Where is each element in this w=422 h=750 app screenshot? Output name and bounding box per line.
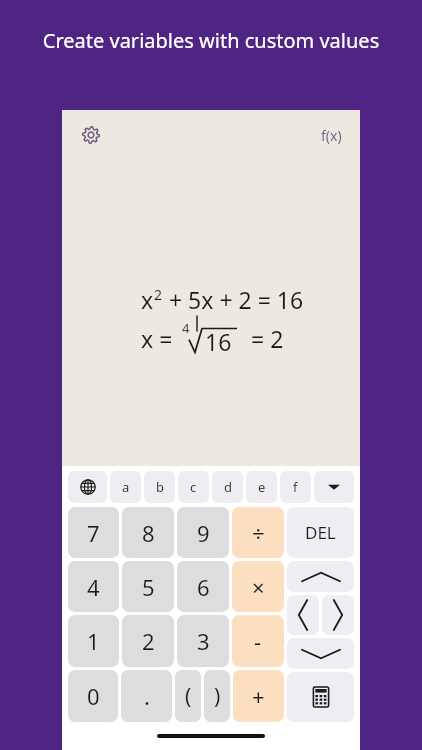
staticText: 9 [197,518,210,548]
button[interactable]: ) [204,670,230,722]
button[interactable]: ( [175,670,201,722]
staticText: × [252,572,265,602]
button[interactable]: b [144,471,175,503]
button[interactable]: c [178,471,209,503]
staticText: - [254,626,262,656]
staticText: 2 [142,626,155,656]
staticText: b [156,478,164,496]
button[interactable]: e [246,471,277,503]
staticText: ) [214,682,221,711]
button[interactable]: 7 [68,507,119,558]
staticText: 1 [87,626,100,656]
staticText: ( [185,682,192,711]
button[interactable]: More [314,471,354,503]
staticText: d [224,478,232,496]
button[interactable]: 3 [177,615,229,667]
button[interactable]: a [110,471,141,503]
button[interactable]: Language [68,471,107,503]
staticText: c [190,478,197,496]
button[interactable]: ÷ [232,507,284,558]
button[interactable]: f(x) [317,122,346,149]
button[interactable]: 4 [68,561,119,612]
staticText: . [144,681,150,711]
button[interactable]: Down [287,638,354,669]
staticText: = 2 [251,323,284,354]
button[interactable]: DEL [287,507,354,558]
button[interactable]: 9 [177,507,229,558]
button[interactable]: 0 [68,670,118,722]
staticText: x [141,284,154,315]
staticText: ÷ [252,518,265,548]
button[interactable]: Right [322,595,354,635]
button[interactable]: + [233,670,284,722]
button[interactable]: Left [287,595,319,635]
button[interactable]: 6 [177,561,229,612]
staticText: 7 [87,518,100,548]
staticText: 3 [197,626,210,656]
staticText: e [258,478,266,496]
staticText: f(x) [321,126,342,145]
staticText: Create variables with custom values [40,27,382,54]
staticText: 0 [87,681,100,711]
staticText: + 5x + 2 = 16 [163,284,304,315]
button[interactable]: × [232,561,284,612]
button[interactable]: Calculator [287,672,354,722]
button[interactable]: - [232,615,284,667]
staticText: 5 [142,572,155,602]
staticText: 4 [182,319,190,337]
button[interactable]: 1 [68,615,119,667]
button[interactable]: 5 [122,561,174,612]
staticText: 6 [197,572,210,602]
staticText: a [122,478,130,496]
staticText: 16 [205,326,232,357]
staticText: 8 [142,518,155,548]
staticText: x = [141,323,173,354]
button[interactable]: 8 [122,507,174,558]
staticText: + [252,681,265,711]
staticText: 4 [87,572,100,602]
staticText: DEL [305,521,336,544]
button[interactable]: . [121,670,172,722]
button[interactable]: d [212,471,243,503]
button[interactable]: Settings [76,120,106,150]
button[interactable]: f [280,471,311,503]
staticText: f [293,478,298,496]
button[interactable]: 2 [122,615,174,667]
staticText: 2 [154,285,163,304]
button[interactable]: Up [287,561,354,592]
